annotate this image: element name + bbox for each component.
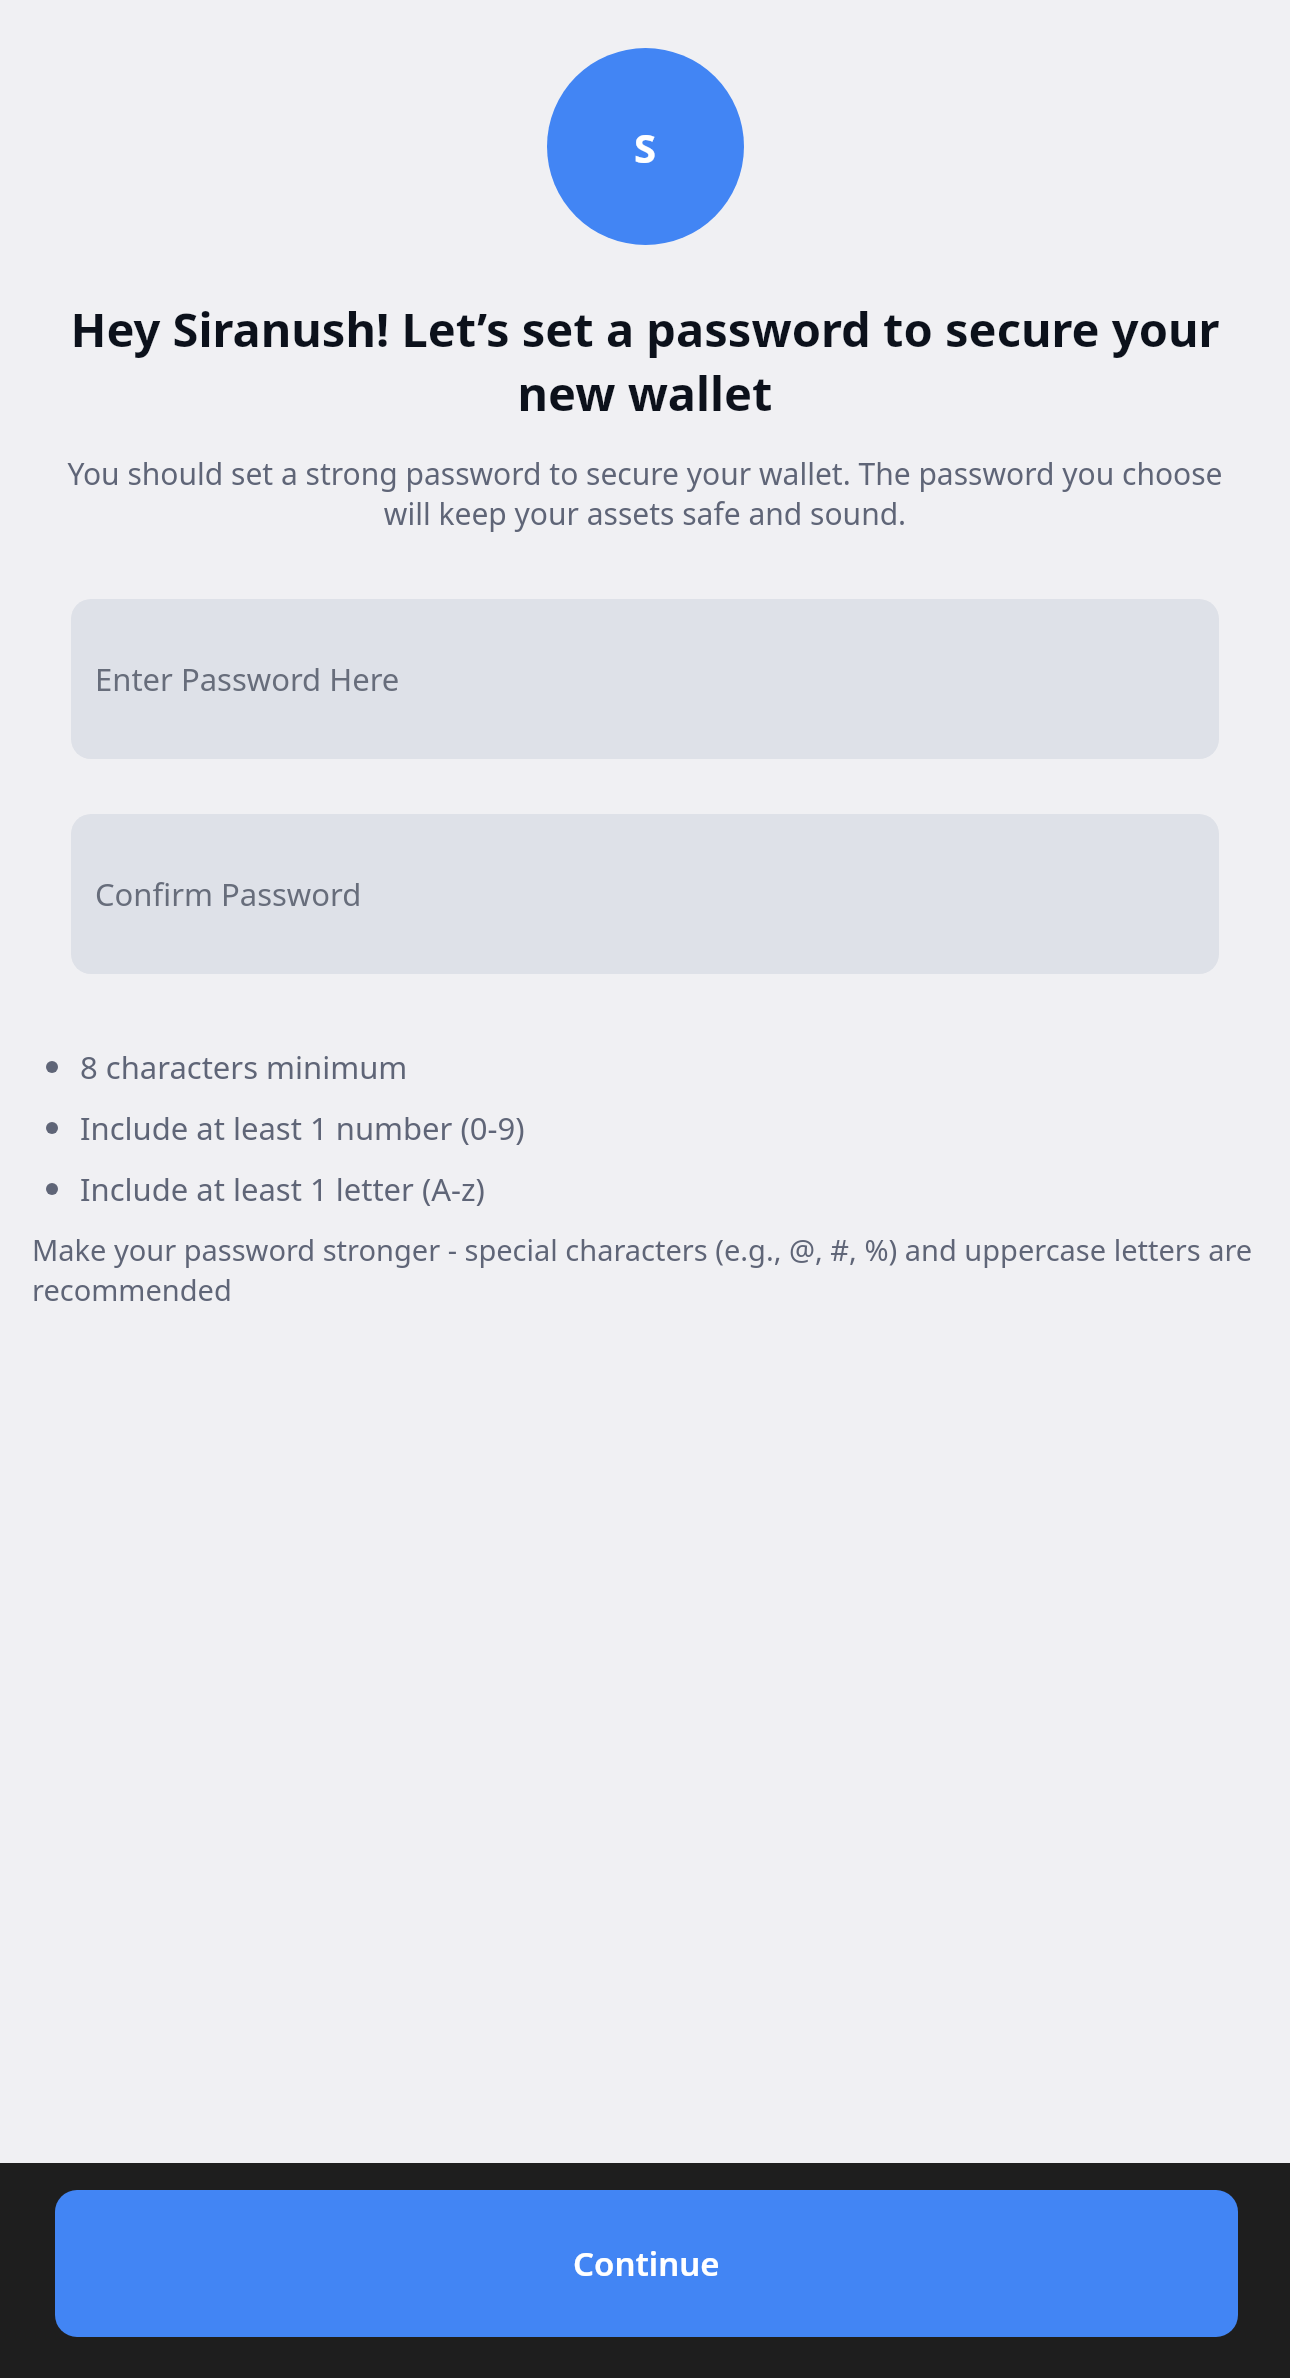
staticText: S [634,120,657,174]
staticText: Continue [573,2241,720,2286]
staticText: Make your password stronger - special ch… [32,1230,1258,1310]
staticText: Include at least 1 letter (A-z) [80,1168,485,1210]
staticText: Enter Password Here [95,658,400,700]
button[interactable]: Confirm Password [71,814,1219,974]
button[interactable]: Profile avatar [547,48,744,245]
staticText: Confirm Password [95,873,362,915]
button[interactable]: Enter Password Here [71,599,1219,759]
staticText: Hey Siranush! Let’s set a password to se… [36,297,1254,425]
staticText: Include at least 1 number (0-9) [80,1107,525,1149]
staticText: 8 characters minimum [80,1046,408,1088]
staticText: You should set a strong password to secu… [62,453,1228,534]
button[interactable]: Continue [55,2190,1238,2337]
